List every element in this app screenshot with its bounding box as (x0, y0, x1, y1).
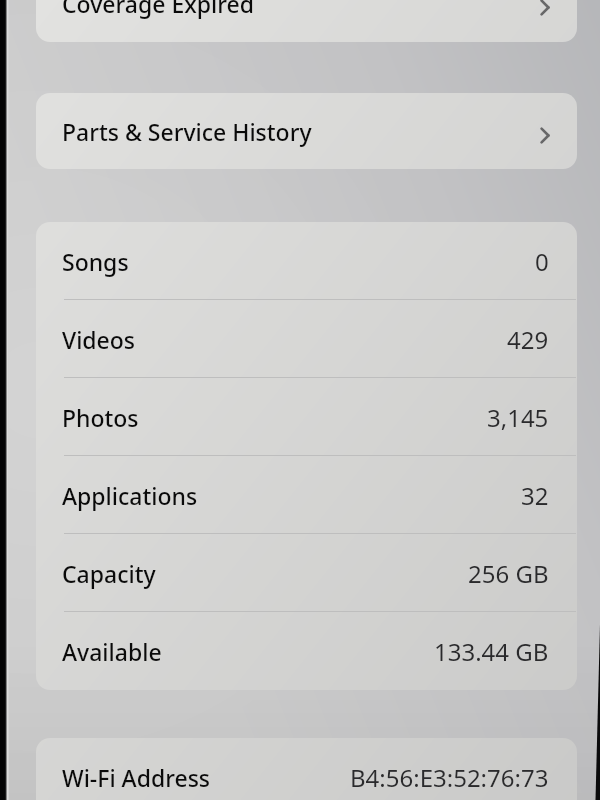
staticText: 32 (521, 479, 549, 512)
button[interactable]: Videos (36, 300, 577, 378)
staticText: Photos (62, 402, 139, 433)
button[interactable]: Capacity (36, 534, 577, 612)
staticText: Capacity (62, 558, 156, 589)
staticText: Songs (62, 246, 129, 277)
staticText: Parts & Service History (62, 116, 312, 147)
other: Parts & Service History (540, 127, 550, 144)
staticText: Videos (62, 324, 136, 355)
staticText: Wi-Fi Address (62, 762, 210, 793)
other: Coverage Expired (540, 0, 550, 16)
staticText: 0 (535, 245, 549, 278)
button[interactable]: Applications (36, 456, 577, 534)
staticText: Coverage Expired (62, 0, 254, 19)
button[interactable]: Photos (36, 378, 577, 456)
staticText: 3,145 (487, 401, 549, 434)
staticText: 133.44 GB (434, 635, 549, 668)
button[interactable]: Songs (36, 222, 577, 300)
staticText: 429 (507, 323, 549, 356)
staticText: Applications (62, 480, 198, 511)
button[interactable]: Available (36, 612, 577, 690)
button[interactable]: Parts & Service History (36, 93, 577, 169)
staticText: Available (62, 636, 162, 667)
staticText: B4:56:E3:52:76:73 (350, 761, 549, 794)
button[interactable]: Wi-Fi Address (36, 738, 577, 800)
staticText: 256 GB (468, 557, 549, 590)
button[interactable]: Coverage Expired (36, 0, 577, 42)
